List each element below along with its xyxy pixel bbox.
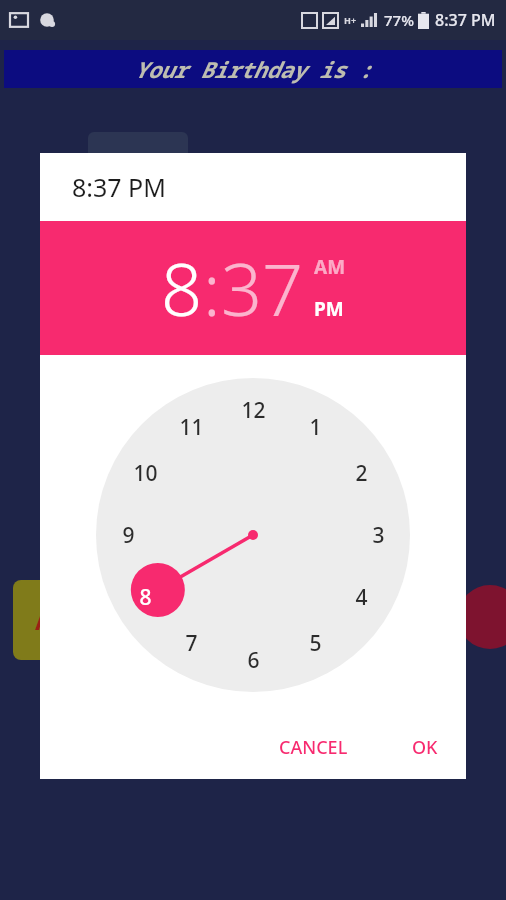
button[interactable]: 10 (118, 446, 172, 500)
button[interactable]: 11 (164, 400, 218, 454)
button[interactable]: OK (398, 727, 452, 768)
button[interactable]: 5 (288, 616, 342, 670)
button[interactable]: AM (314, 252, 346, 282)
staticText: 8 (139, 583, 152, 612)
button[interactable]: 1 (288, 400, 342, 454)
staticText: H+ (344, 14, 357, 26)
staticText: 3 (372, 521, 385, 550)
staticText: : (203, 239, 221, 337)
staticText: CANCEL (279, 735, 348, 760)
button[interactable]: 12 (226, 383, 280, 437)
staticText: 37 (221, 239, 304, 337)
button[interactable]: 2 (334, 446, 388, 500)
button[interactable]: 7 (164, 616, 218, 670)
staticText: 10 (133, 459, 158, 488)
staticText: 7 (185, 629, 198, 658)
staticText: OK (412, 735, 438, 760)
staticText: Your Birthday is : (134, 54, 372, 84)
staticText: 2 (355, 459, 368, 488)
button[interactable]: 37 (221, 239, 304, 337)
staticText: 12 (241, 396, 266, 425)
staticText: 1 (309, 413, 322, 442)
button[interactable]: 9 (101, 508, 155, 562)
staticText: AM (314, 254, 346, 280)
staticText: PM (314, 296, 344, 322)
staticText: 8:37 PM (72, 170, 166, 204)
button[interactable]: A (13, 580, 73, 660)
staticText: 8:37 PM (435, 9, 496, 31)
staticText: A (35, 604, 52, 637)
staticText: 4 (355, 583, 368, 612)
button[interactable]: 4 (334, 570, 388, 624)
staticText: 8 (161, 239, 203, 337)
button[interactable]: 3 (351, 508, 405, 562)
button[interactable]: Record (458, 585, 506, 649)
button[interactable]: 6 (226, 633, 280, 687)
button[interactable]: 8 (161, 239, 203, 337)
button[interactable]: CANCEL (265, 727, 362, 768)
staticText: 9 (122, 521, 135, 550)
button[interactable]: 8 (118, 570, 172, 624)
button[interactable]: PM (314, 294, 344, 324)
staticText: 6 (247, 646, 260, 675)
staticText: 11 (179, 413, 204, 442)
staticText: 77% (384, 10, 414, 30)
staticText: 5 (309, 629, 322, 658)
